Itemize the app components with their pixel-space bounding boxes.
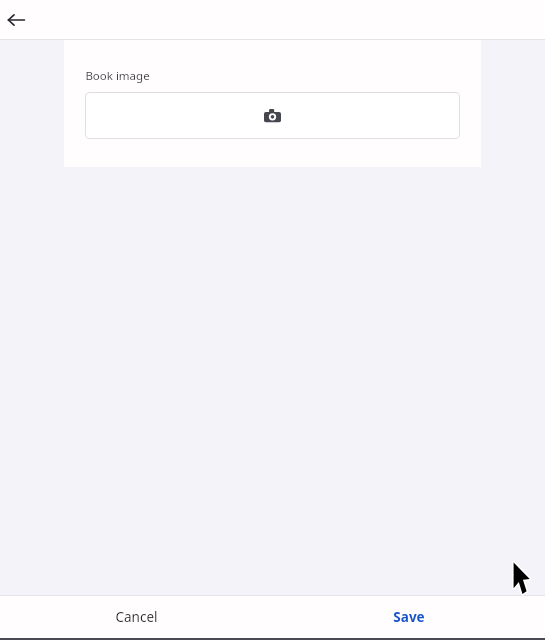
- button[interactable]: Save: [272, 596, 545, 638]
- staticText: Book image: [85, 68, 150, 84]
- staticText: Save: [393, 608, 425, 626]
- button[interactable]: Cancel: [0, 596, 272, 638]
- button[interactable]: Add book image: [85, 92, 460, 139]
- staticText: Cancel: [115, 608, 158, 626]
- button[interactable]: Back: [2, 6, 30, 34]
